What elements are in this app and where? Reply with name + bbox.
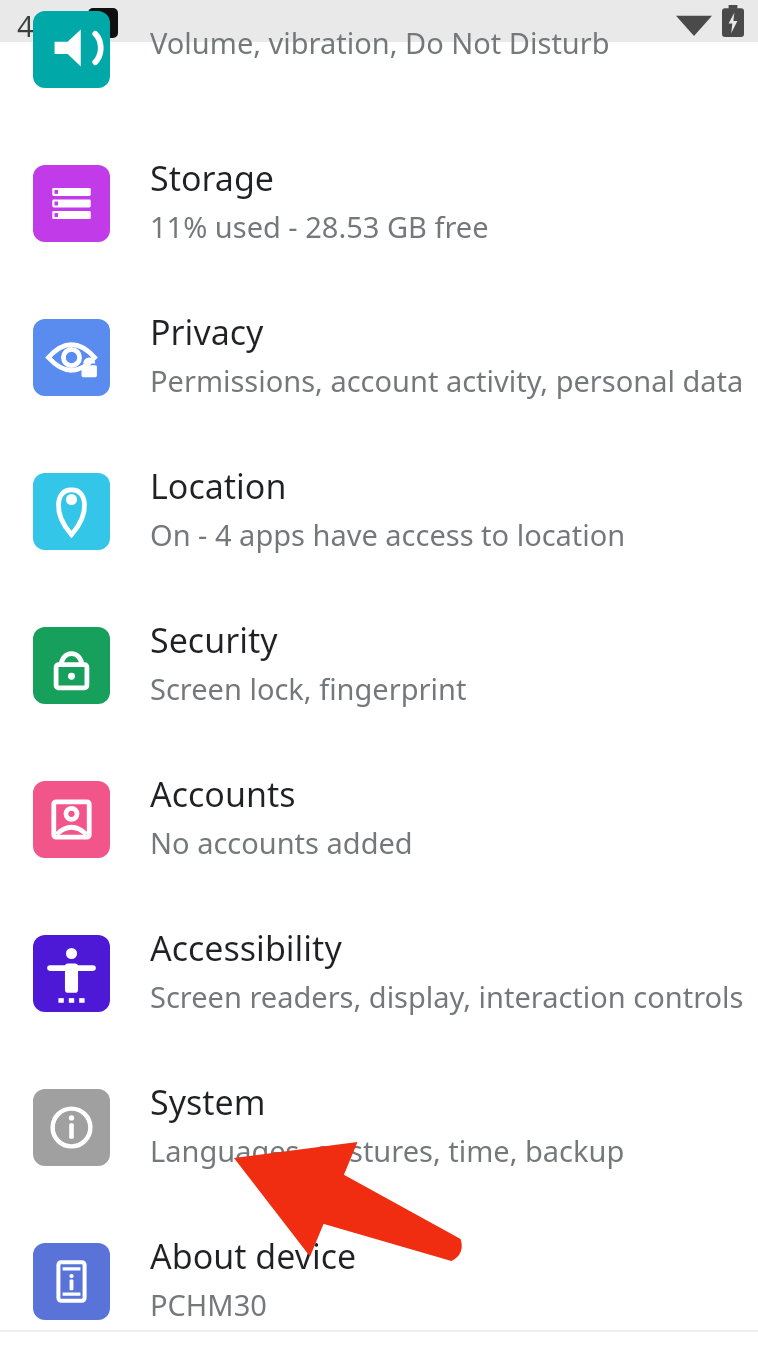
staticText: 4:02	[17, 6, 75, 45]
staticText: Screen readers, display, interaction con…	[150, 977, 744, 1016]
button[interactable]: Volume, vibration, Do Not Disturb	[0, 0, 758, 127]
button[interactable]: Accounts	[0, 743, 758, 897]
staticText: Screen lock, fingerprint	[150, 669, 467, 708]
button[interactable]: About device	[0, 1205, 758, 1350]
button[interactable]: Location	[0, 435, 758, 589]
staticText: PCHM30	[150, 1285, 267, 1324]
button[interactable]: System	[0, 1051, 758, 1205]
staticText: Permissions, account activity, personal …	[150, 361, 744, 400]
staticText: Security	[150, 617, 278, 663]
staticText: Location	[150, 463, 287, 509]
staticText: Storage	[150, 155, 275, 201]
button[interactable]: Storage	[0, 127, 758, 281]
staticText: Languages, gestures, time, backup	[150, 1131, 625, 1170]
staticText: Accessibility	[150, 925, 342, 971]
staticText: No accounts added	[150, 823, 413, 862]
staticText: Volume, vibration, Do Not Disturb	[150, 23, 610, 62]
staticText: 11% used - 28.53 GB free	[150, 207, 489, 246]
button[interactable]: Privacy	[0, 281, 758, 435]
button[interactable]: Accessibility	[0, 897, 758, 1051]
button[interactable]: Security	[0, 589, 758, 743]
staticText: Accounts	[150, 771, 296, 817]
staticText: System	[150, 1079, 266, 1125]
staticText: Privacy	[150, 309, 264, 355]
staticText: About device	[150, 1233, 357, 1279]
staticText: On - 4 apps have access to location	[150, 515, 626, 554]
